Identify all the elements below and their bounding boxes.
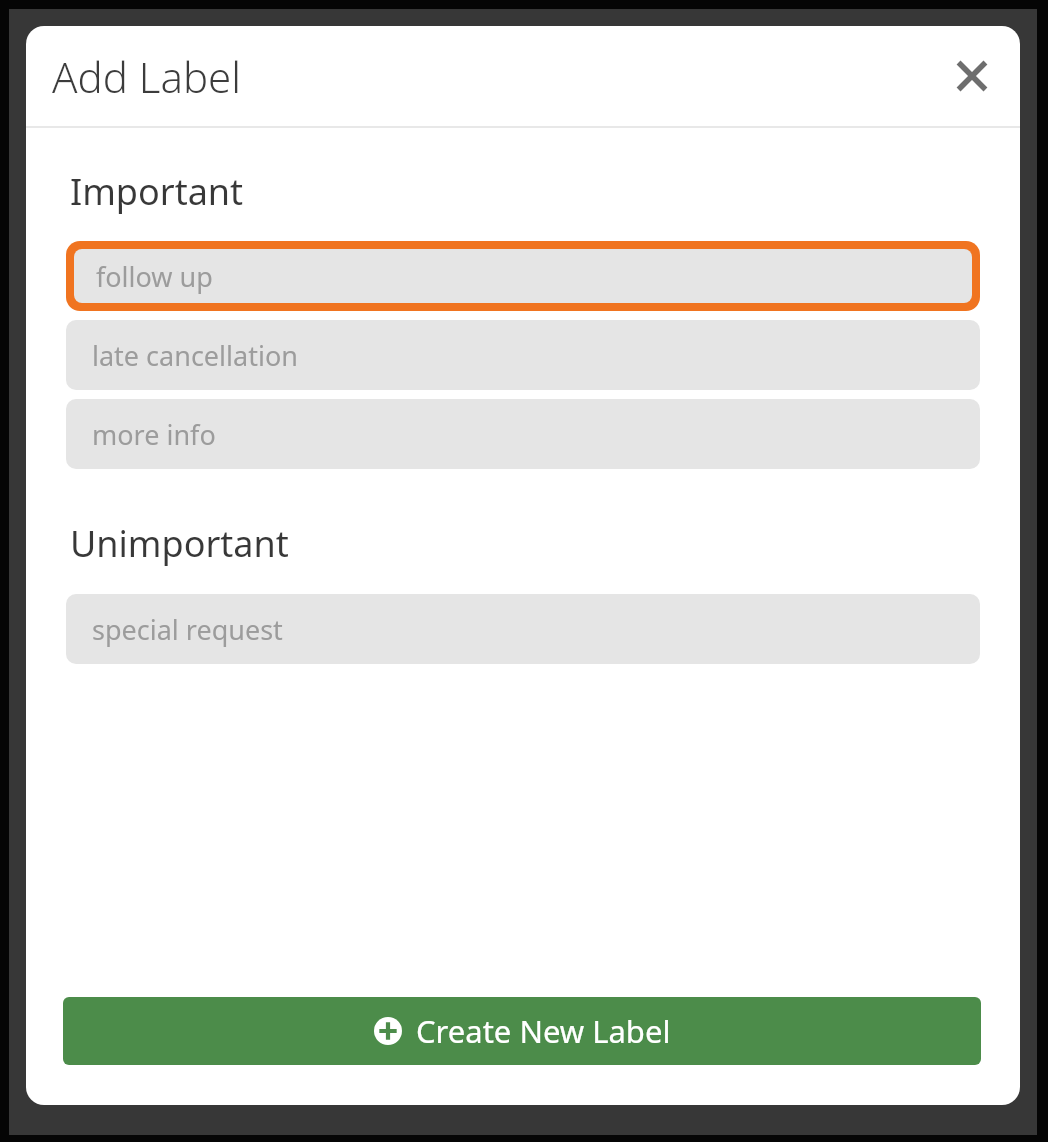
button[interactable]: more info — [66, 399, 980, 469]
staticText: late cancellation — [92, 337, 298, 374]
staticText: Unimportant — [70, 519, 289, 568]
staticText: more info — [92, 416, 216, 453]
staticText: Create New Label — [416, 1010, 671, 1052]
button[interactable]: special request — [66, 594, 980, 664]
button[interactable]: late cancellation — [66, 320, 980, 390]
staticText: special request — [92, 611, 283, 648]
button[interactable]: follow up — [66, 241, 980, 311]
staticText: follow up — [96, 258, 213, 295]
staticText: Add Label — [52, 48, 242, 105]
button[interactable]: Create New Label — [63, 997, 981, 1065]
button[interactable]: Close — [944, 48, 1000, 104]
staticText: Important — [70, 167, 244, 216]
